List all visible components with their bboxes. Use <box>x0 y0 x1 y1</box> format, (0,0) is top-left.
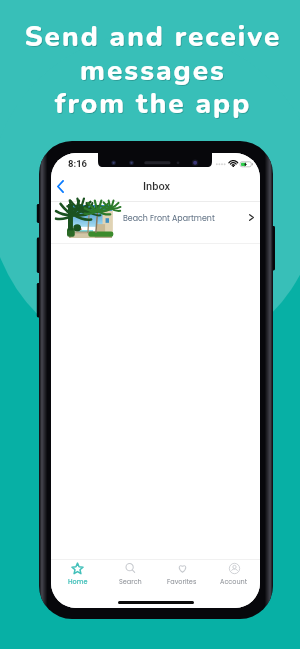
staticText: Send and receive messages from the app <box>4 19 300 124</box>
staticText: Beach Front Apartment <box>123 213 215 224</box>
staticText: Send and receive messages from the app <box>3 18 300 123</box>
button[interactable]: Account <box>208 560 260 590</box>
button[interactable]: Home <box>51 560 104 590</box>
staticText: 8:16 <box>68 158 88 169</box>
staticText: Account <box>220 577 248 586</box>
button[interactable]: Back <box>51 173 71 199</box>
staticText: Home <box>68 577 88 586</box>
button[interactable]: Search <box>104 560 156 590</box>
staticText: Inbox <box>143 180 171 193</box>
button[interactable]: Favorites <box>156 560 208 590</box>
button[interactable]: Beach Front Apartment <box>51 202 260 244</box>
staticText: Favorites <box>167 577 197 586</box>
staticText: Search <box>119 577 142 586</box>
